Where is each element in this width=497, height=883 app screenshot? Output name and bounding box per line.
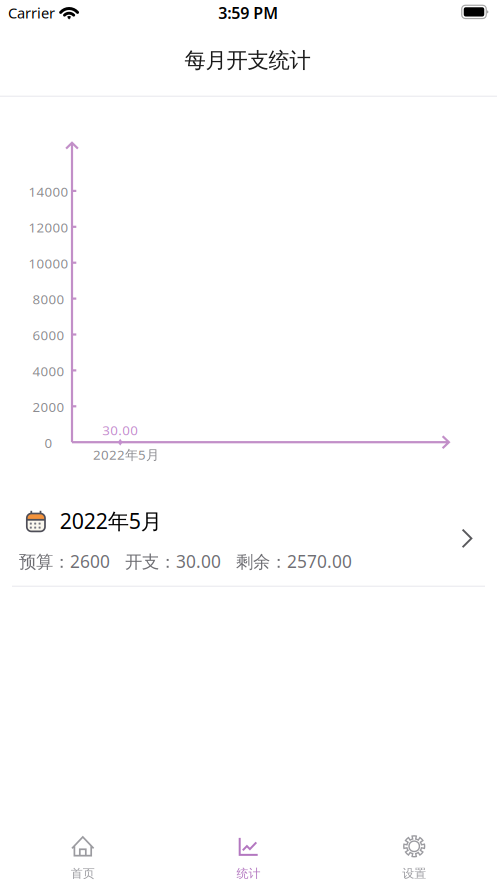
staticText: 6000	[33, 326, 65, 344]
staticText: 30.00	[102, 421, 138, 439]
button[interactable]: 首页	[0, 813, 165, 883]
staticText: 统计	[236, 866, 260, 881]
staticText: 预算：2600 开支：30.00 剩余：2570.00	[19, 550, 352, 573]
staticText: 2022年5月	[93, 446, 159, 463]
button[interactable]: 统计	[166, 813, 331, 883]
staticText: 0	[45, 434, 53, 452]
staticText: 4000	[33, 362, 65, 380]
staticText: 2022年5月	[60, 506, 162, 535]
staticText: 3:59 PM	[218, 2, 278, 23]
staticText: 每月开支统计	[184, 47, 310, 74]
staticText: 8000	[33, 290, 65, 308]
staticText: 10000	[29, 254, 69, 272]
staticText: 2000	[33, 398, 65, 416]
staticText: 设置	[402, 866, 426, 881]
staticText: Carrier	[8, 3, 55, 22]
button[interactable]: 设置	[332, 813, 497, 883]
staticText: 14000	[29, 183, 69, 200]
staticText: 12000	[29, 218, 69, 236]
button[interactable]: 2022年5月	[0, 486, 497, 586]
staticText: 首页	[71, 866, 95, 881]
